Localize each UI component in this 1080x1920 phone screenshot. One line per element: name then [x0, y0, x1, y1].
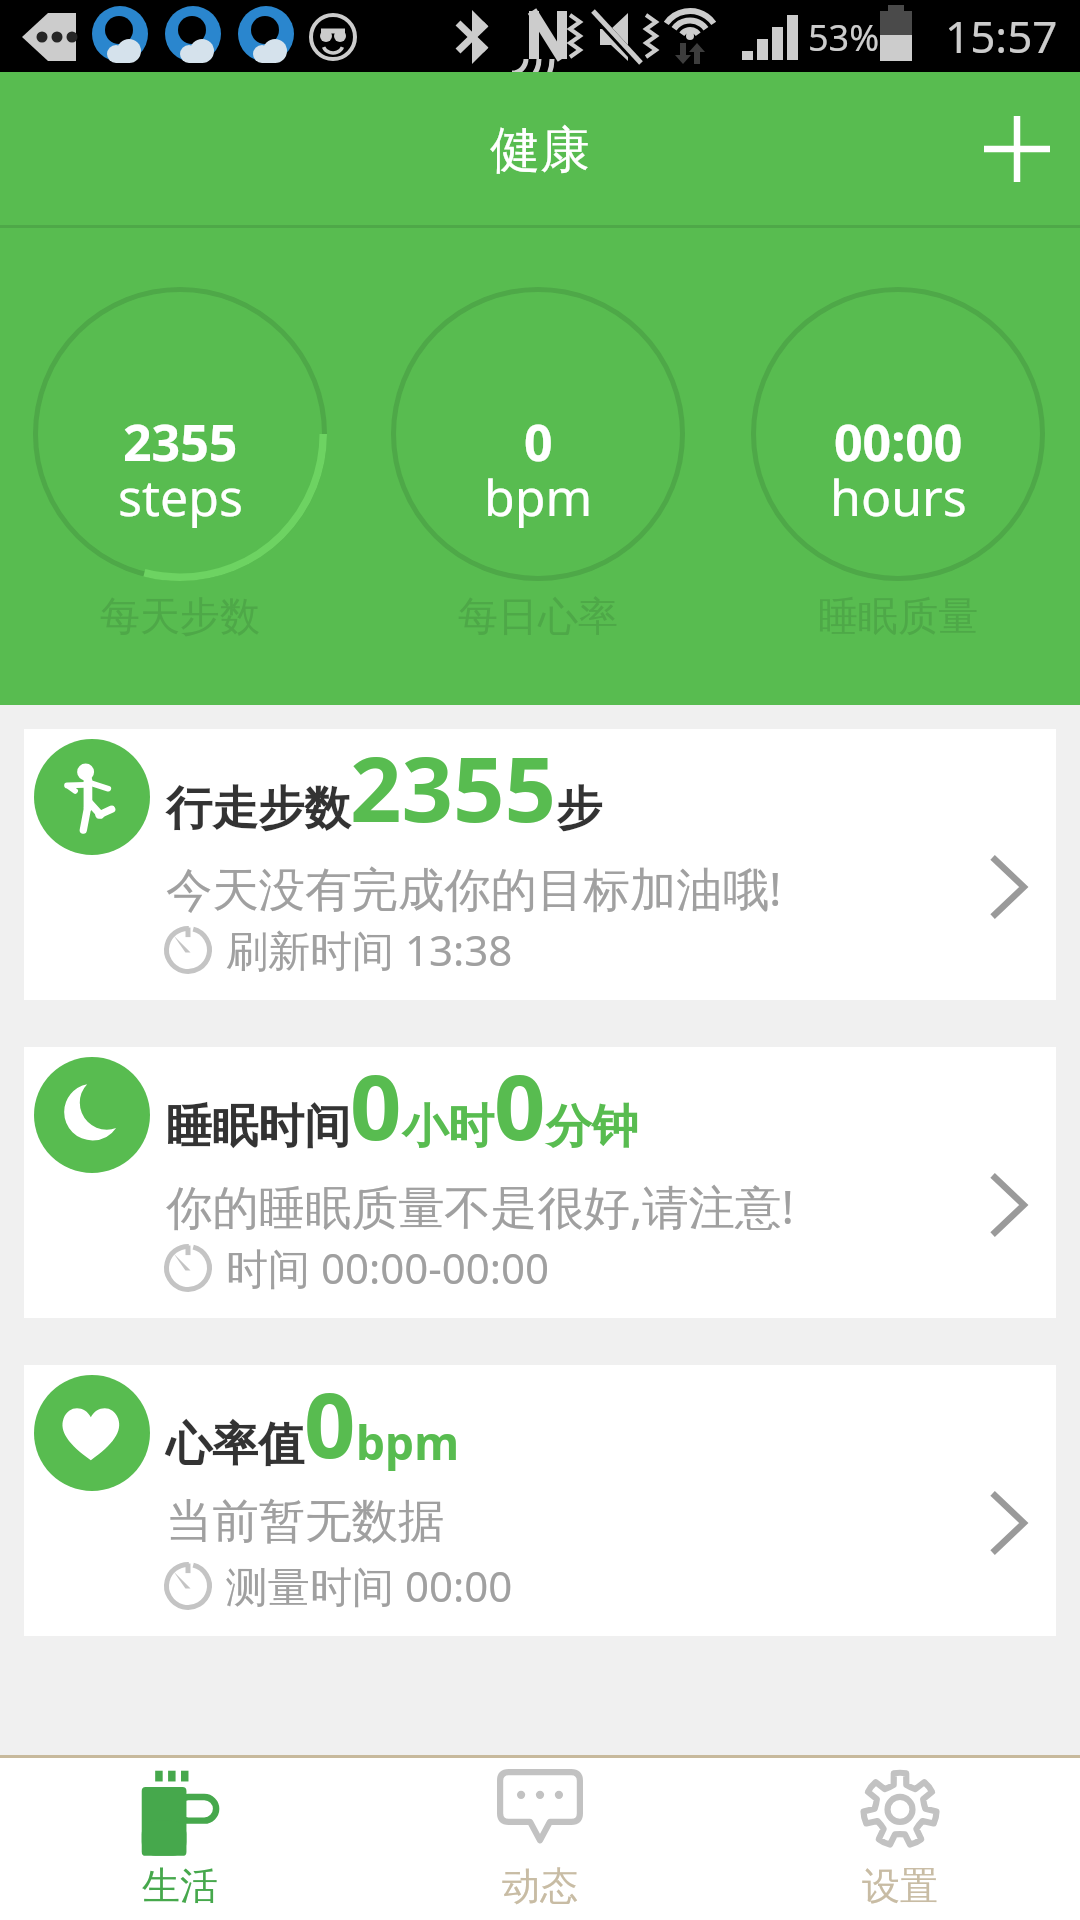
- staticText: hours: [830, 463, 967, 531]
- staticText: bpm: [356, 1411, 459, 1474]
- button[interactable]: More: [966, 1167, 1042, 1243]
- staticText: 动态: [502, 1862, 578, 1910]
- staticText: bpm: [484, 463, 593, 531]
- button[interactable]: 心率值: [24, 1365, 1056, 1636]
- button[interactable]: More: [966, 1485, 1042, 1561]
- staticText: 0: [350, 1044, 402, 1167]
- staticText: 0: [524, 408, 553, 476]
- button[interactable]: 设置: [720, 1758, 1080, 1920]
- button[interactable]: 生活: [0, 1758, 360, 1920]
- staticText: 健康: [490, 119, 590, 182]
- staticText: 步: [556, 780, 602, 838]
- staticText: steps: [118, 463, 243, 531]
- button[interactable]: 每日心率: [391, 287, 685, 581]
- staticText: 时间 00:00-00:00: [226, 1239, 550, 1296]
- button[interactable]: 行走步数: [24, 729, 1056, 1000]
- staticText: 53%: [808, 13, 880, 62]
- staticText: 小时: [402, 1098, 494, 1156]
- staticText: 今天没有完成你的目标加油哦!: [166, 856, 782, 919]
- staticText: 2355: [123, 408, 238, 476]
- staticText: 2355: [350, 726, 556, 849]
- staticText: 每天步数: [100, 591, 260, 641]
- staticText: 每日心率: [458, 591, 618, 641]
- button[interactable]: 睡眠质量: [751, 287, 1045, 581]
- staticText: 你的睡眠质量不是很好,请注意!: [166, 1174, 794, 1237]
- button[interactable]: More: [966, 849, 1042, 925]
- staticText: 0: [494, 1044, 546, 1167]
- staticText: 测量时间 00:00: [226, 1557, 513, 1614]
- button[interactable]: 睡眠时间: [24, 1047, 1056, 1318]
- staticText: 行走步数: [166, 780, 350, 838]
- staticText: 设置: [862, 1862, 938, 1910]
- staticText: 心率值: [166, 1416, 304, 1474]
- button[interactable]: 动态: [360, 1758, 720, 1920]
- staticText: 睡眠质量: [818, 591, 978, 641]
- staticText: 0: [304, 1362, 356, 1485]
- button[interactable]: 每天步数: [33, 287, 327, 581]
- staticText: 分钟: [546, 1098, 638, 1156]
- staticText: 生活: [142, 1862, 218, 1910]
- staticText: 睡眠时间: [166, 1098, 350, 1156]
- staticText: 15:57: [945, 6, 1058, 66]
- button[interactable]: Add: [964, 96, 1070, 202]
- staticText: 当前暂无数据: [166, 1492, 445, 1550]
- staticText: 00:00: [834, 408, 963, 476]
- staticText: 刷新时间 13:38: [226, 921, 513, 978]
